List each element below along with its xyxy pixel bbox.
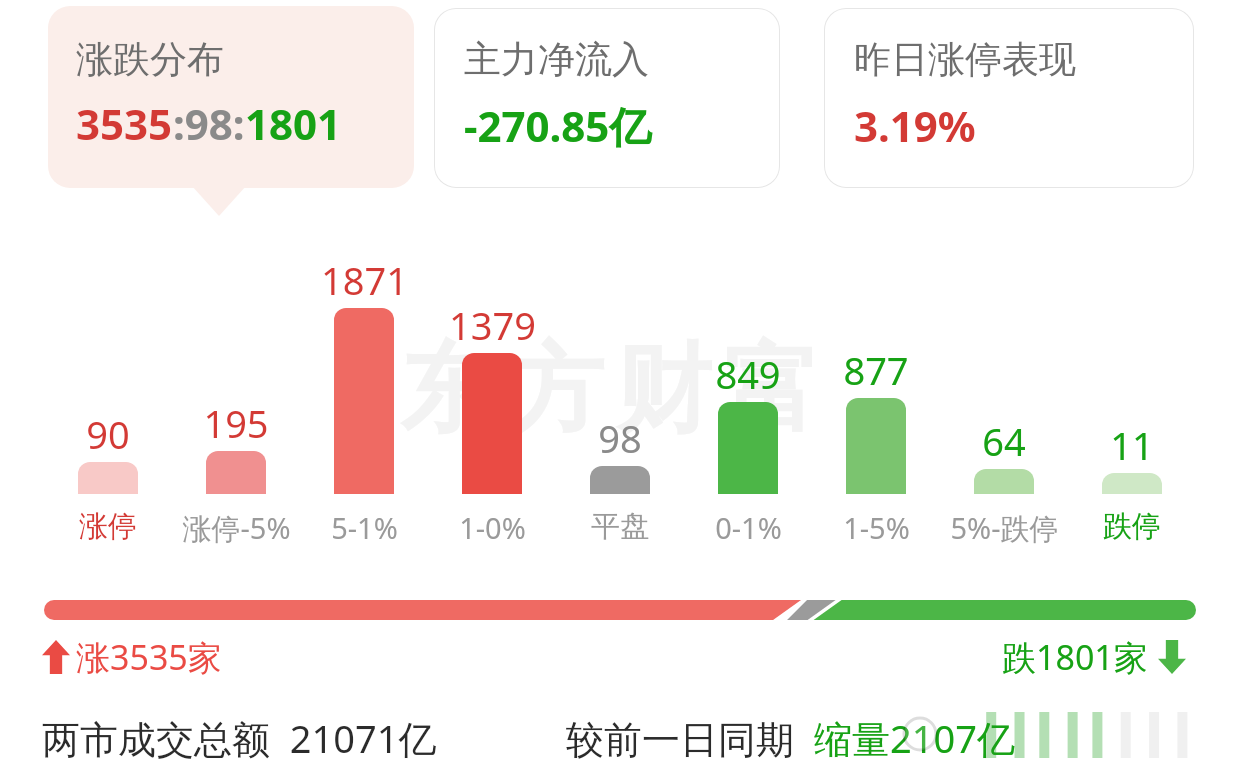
staticText: 5%-跌停 [950, 508, 1059, 548]
button[interactable]: 涨3535家 [42, 634, 222, 680]
staticText: 3.19% [854, 97, 976, 154]
staticText: 富 [724, 330, 832, 451]
button[interactable] [462, 353, 522, 494]
staticText: 主力净流入 [464, 36, 649, 83]
button[interactable] [44, 600, 1196, 620]
staticText: 涨停-5% [182, 508, 291, 548]
staticText: 涨3535家 [76, 634, 222, 680]
staticText: 0-1% [715, 508, 782, 547]
staticText: 195 [203, 397, 269, 449]
button[interactable] [206, 451, 266, 494]
staticText: 缩量2107亿 [814, 712, 1015, 764]
staticText: 跌1801家 [1002, 634, 1148, 680]
staticText: 涨跌分布 [76, 36, 224, 83]
button[interactable] [1102, 473, 1162, 494]
button[interactable] [334, 308, 394, 494]
staticText: 昨日涨停表现 [854, 36, 1076, 83]
staticText: -270.85亿 [464, 97, 652, 154]
staticText: 1379 [449, 299, 536, 351]
staticText: 跌停 [1103, 508, 1161, 545]
staticText: 1871 [321, 254, 408, 306]
staticText: 财 [616, 330, 724, 451]
staticText: 较前一日同期 [566, 712, 814, 764]
staticText: 东 [400, 330, 508, 451]
staticText: 涨停 [79, 508, 137, 545]
staticText: 平盘 [591, 508, 649, 545]
staticText: 5-1% [331, 508, 398, 547]
button[interactable] [590, 466, 650, 494]
staticText: 方 [508, 330, 616, 451]
staticText: 1801 [245, 95, 342, 152]
staticText: 877 [843, 344, 909, 396]
button[interactable]: 昨日涨停表现 [824, 8, 1194, 188]
button[interactable] [974, 469, 1034, 494]
button[interactable] [78, 462, 138, 494]
button[interactable] [718, 402, 778, 494]
staticText: 两市成交总额 21071亿 [42, 712, 437, 764]
button[interactable]: 涨跌分布 [48, 6, 414, 188]
button[interactable]: 主力净流入 [434, 8, 780, 188]
button[interactable]: 两市成交总额 21071亿 [42, 712, 437, 764]
staticText: 64 [982, 415, 1026, 467]
button[interactable]: 较前一日同期 [566, 712, 1015, 764]
staticText: 849 [715, 348, 781, 400]
staticText: 3535 [76, 95, 173, 152]
staticText: 1-0% [459, 508, 526, 547]
staticText: 11 [1110, 419, 1154, 471]
staticText: 1-5% [843, 508, 910, 547]
staticText: 90 [86, 408, 130, 460]
button[interactable]: 跌1801家 [1002, 634, 1186, 680]
staticText: :98: [173, 95, 245, 152]
staticText: 98 [598, 412, 642, 464]
button[interactable] [846, 398, 906, 494]
